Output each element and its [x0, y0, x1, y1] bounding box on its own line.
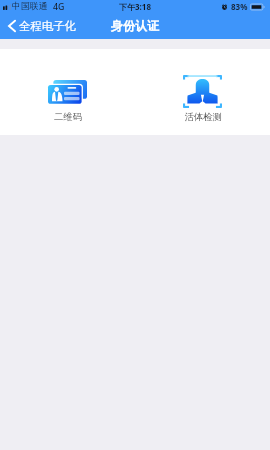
staticText: 83% [231, 1, 248, 12]
button[interactable]: 活体检测 [183, 49, 222, 123]
button[interactable]: Back [0, 18, 82, 34]
staticText: 二维码 [54, 111, 82, 123]
staticText: 全程电子化 [19, 19, 76, 33]
staticText: 下午3:18 [119, 1, 151, 12]
staticText: 身份认证 [111, 18, 159, 33]
other: Back [8, 20, 16, 32]
staticText: 4G [53, 1, 65, 13]
staticText: 中国联通 [12, 1, 48, 12]
staticText: 活体检测 [184, 111, 222, 123]
button[interactable]: 二维码 [48, 49, 87, 123]
